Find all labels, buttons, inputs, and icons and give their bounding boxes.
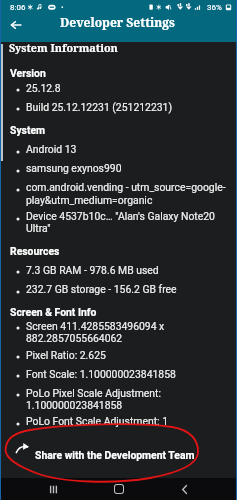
staticText: play&utm_medium=organic <box>26 194 153 206</box>
staticText: 7.3 GB RAM - 978.6 MB used <box>26 264 159 276</box>
staticText: Screen & Font Info <box>10 306 97 318</box>
staticText: Version <box>10 67 46 79</box>
staticText: Resources <box>10 245 60 257</box>
staticText: Font Scale: 1.100000023841858 <box>26 368 176 380</box>
button[interactable]: Share with the Development Team <box>0 437 237 459</box>
staticText: Ultra" <box>26 222 51 234</box>
staticText: Device 4537b10c… "Alan's Galaxy Note20 <box>26 210 215 222</box>
staticText: PoLo Pixel Scale Adjustment: <box>26 387 162 399</box>
button[interactable]: Back <box>172 478 196 500</box>
staticText: 1.100000023841858 <box>26 399 123 411</box>
button[interactable]: Recent apps <box>41 478 65 500</box>
staticText: Android 13 <box>26 143 77 155</box>
button[interactable]: Back <box>5 14 26 35</box>
staticText: 882.2857055664062 <box>26 332 123 344</box>
staticText: Pixel Ratio: 2.625 <box>26 349 106 361</box>
staticText: 232.7 GB storage - 156.2 GB free <box>26 283 177 295</box>
staticText: System <box>10 124 46 136</box>
staticText: 25.12.8 <box>26 82 61 94</box>
button[interactable]: Home <box>107 478 131 500</box>
staticText: Share with the Development Team <box>35 449 195 461</box>
staticText: Screen 411.4285583496094 x <box>26 320 165 332</box>
staticText: 8:06 <box>10 3 26 12</box>
staticText: Build 25.12.12231 (251212231) <box>26 101 173 113</box>
staticText: com.android.vending - utm_source=google- <box>26 181 226 193</box>
staticText: samsung exynos990 <box>26 162 122 174</box>
staticText: PoLo Font Scale Adjustment: 1 <box>26 415 168 427</box>
staticText: System Information <box>9 40 118 55</box>
staticText: Developer Settings <box>60 14 175 30</box>
staticText: 36% <box>207 3 222 12</box>
